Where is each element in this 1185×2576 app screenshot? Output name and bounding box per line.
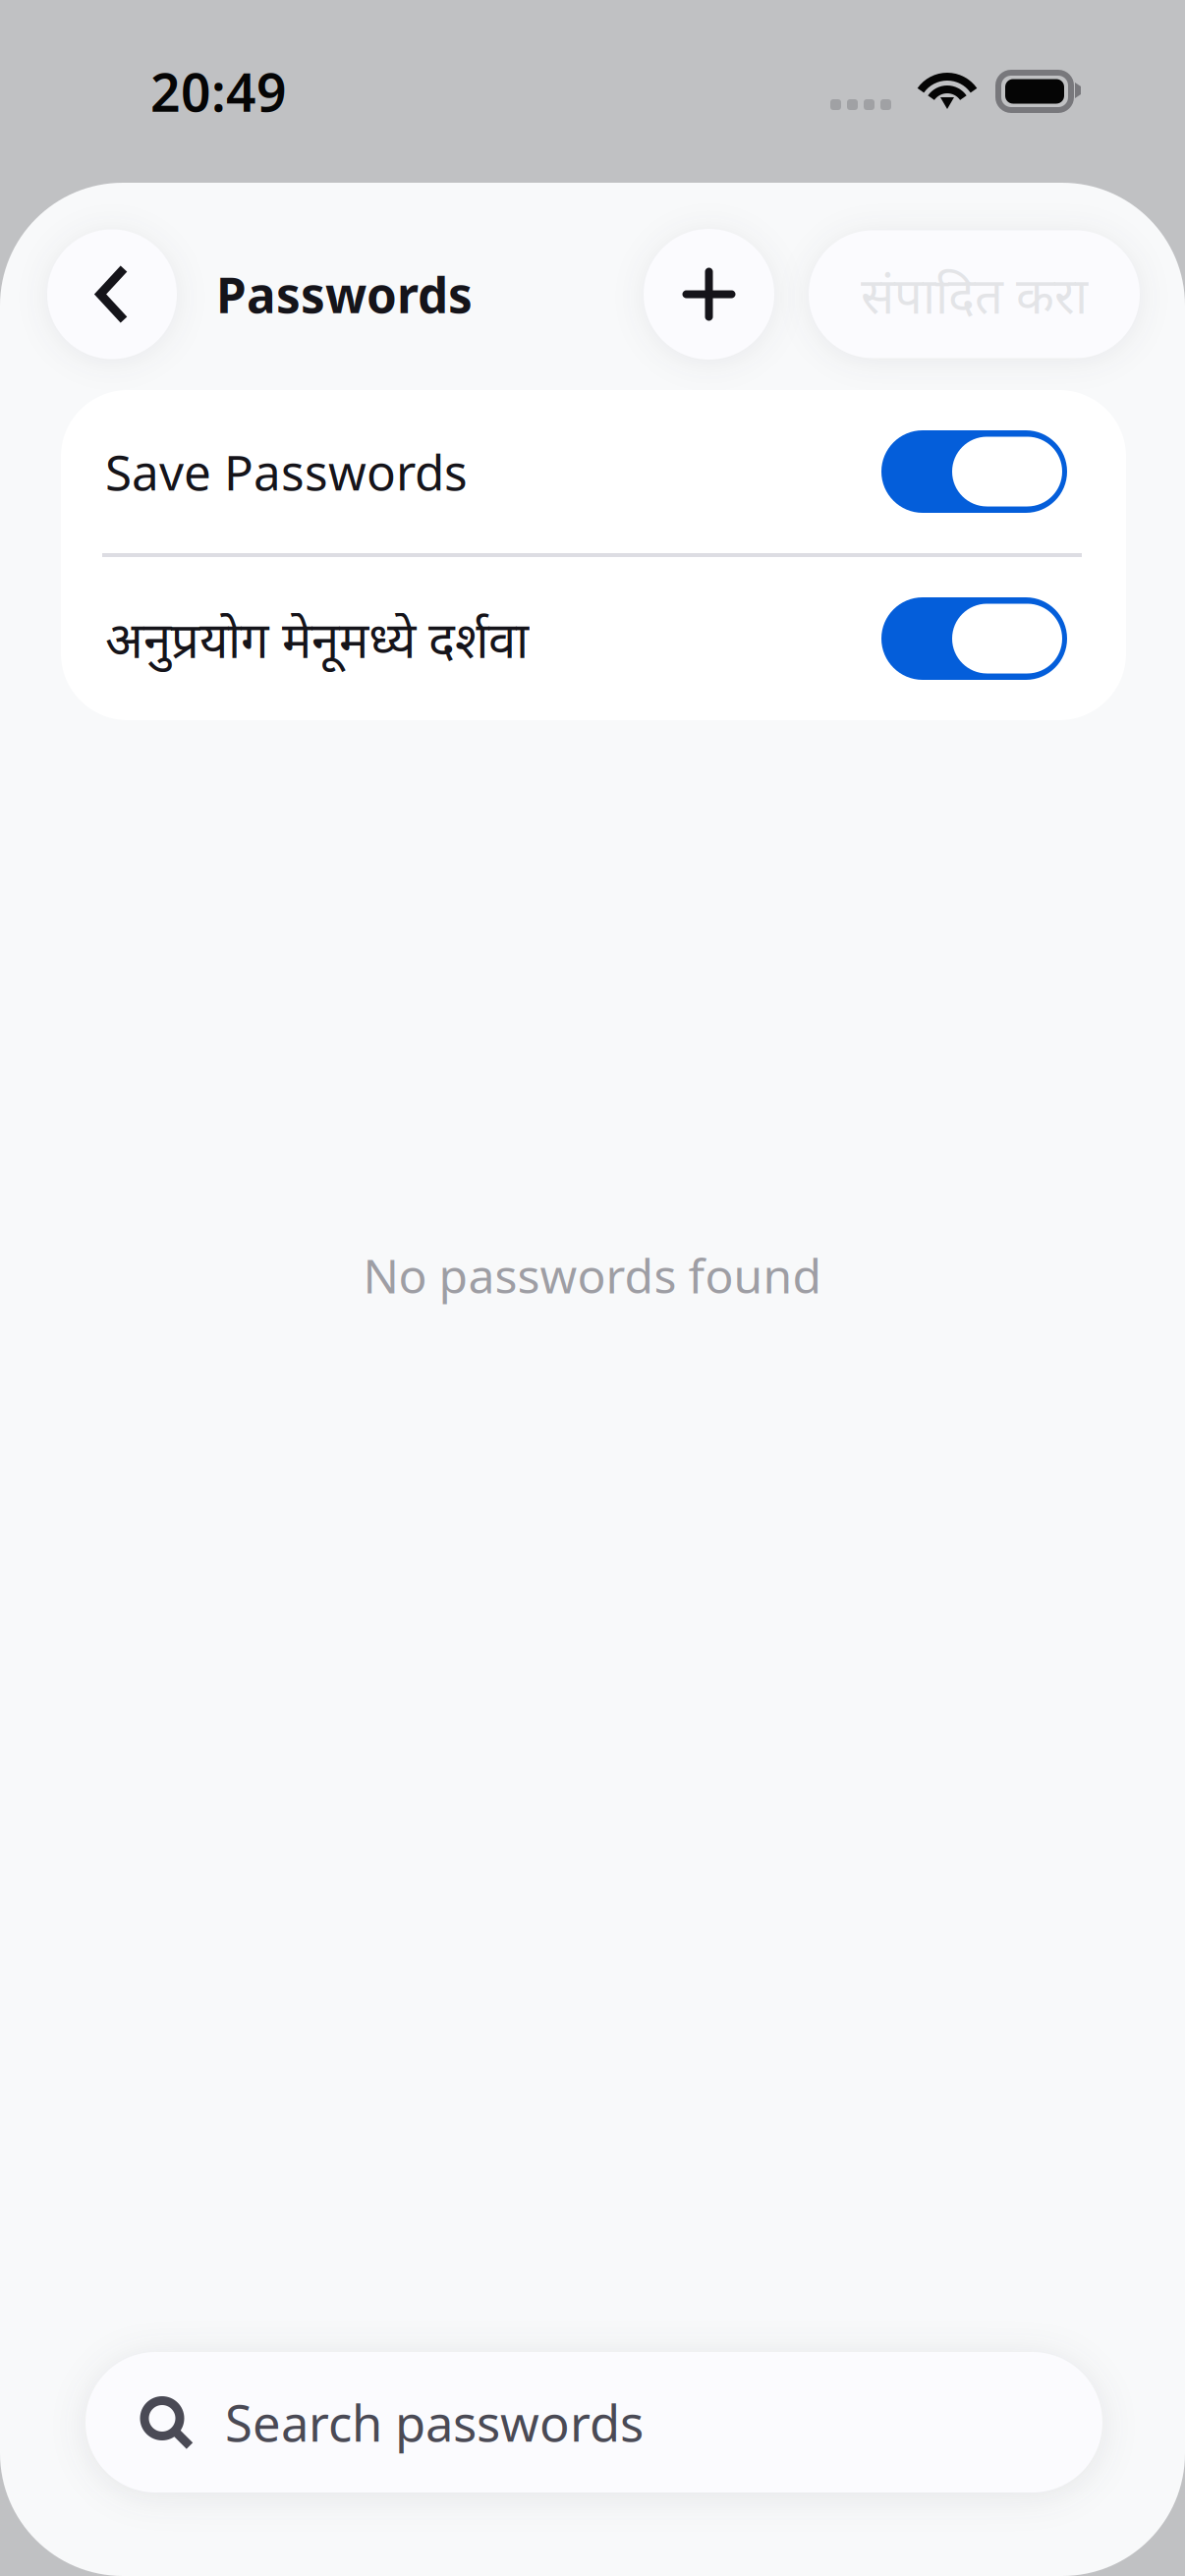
- staticText: अनुप्रयोग मेनूमध्ये दर्शवा: [105, 606, 529, 672]
- button[interactable]: Back: [47, 229, 177, 359]
- button[interactable]: Add password: [644, 229, 774, 360]
- button[interactable]: संपादित करा: [809, 230, 1140, 358]
- staticText: Search passwords: [225, 2389, 644, 2455]
- staticText: Save Passwords: [105, 439, 468, 504]
- button[interactable]: Search passwords: [85, 2352, 1102, 2492]
- staticText: No passwords found: [363, 1244, 822, 1306]
- staticText: Passwords: [216, 262, 473, 326]
- button[interactable]: अनुप्रयोग मेनूमध्ये दर्शवा: [61, 557, 1126, 720]
- button[interactable]: Save Passwords: [61, 390, 1126, 553]
- staticText: संपादित करा: [861, 261, 1088, 327]
- staticText: 20:49: [150, 57, 287, 126]
